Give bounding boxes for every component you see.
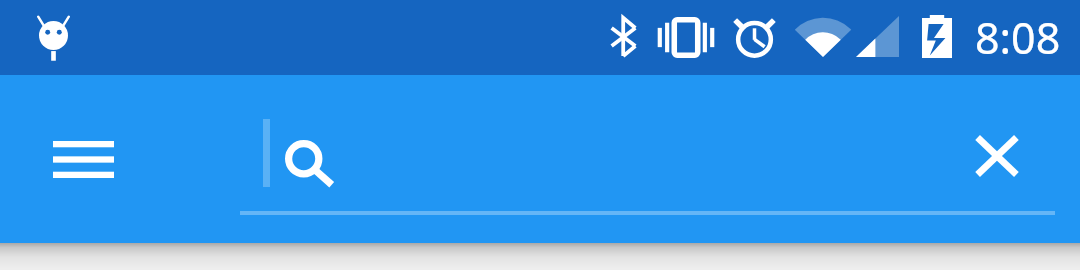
button[interactable]: Navigation menu (23, 93, 144, 225)
button[interactable]: Close search (936, 90, 1057, 222)
staticText: 8:08 (975, 8, 1061, 67)
